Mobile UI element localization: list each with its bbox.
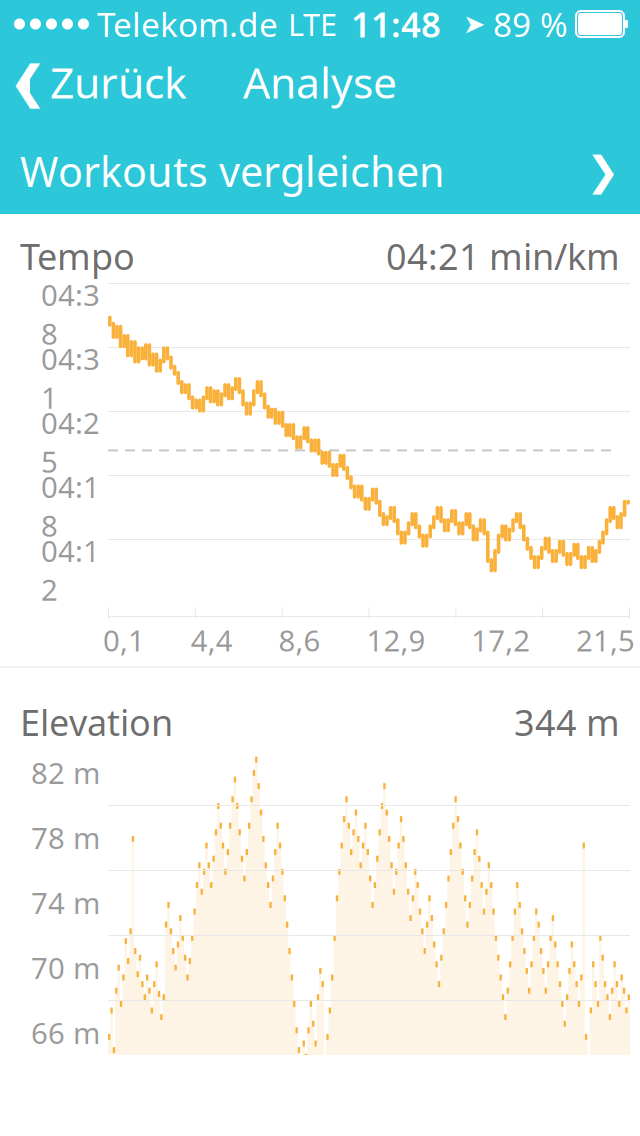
staticText: 78 m [31, 818, 100, 857]
staticText: 04:38 [41, 275, 100, 353]
staticText: Zurück [50, 54, 187, 110]
staticText: Telekom.de [97, 2, 278, 46]
staticText: 04:21 min/km [386, 232, 620, 280]
staticText: 66 m [31, 1013, 100, 1052]
staticText: 21,5 [576, 620, 635, 659]
staticText: ➤ [463, 9, 485, 39]
staticText: 04:25 [41, 403, 100, 481]
staticText: 04:31 [41, 339, 100, 417]
staticText: 344 m [514, 698, 620, 746]
staticText: ❯ [586, 148, 620, 194]
staticText: 0,1 [103, 620, 145, 659]
staticText: Tempo [20, 232, 135, 280]
staticText: Analyse [243, 54, 397, 110]
staticText: 04:12 [41, 531, 100, 609]
staticText: 74 m [31, 883, 100, 922]
button[interactable]: Workouts vergleichen [0, 140, 640, 202]
staticText: ❮ [9, 56, 47, 108]
staticText: 70 m [31, 948, 100, 987]
staticText: 89 % [493, 2, 568, 46]
staticText: 04:18 [41, 467, 100, 545]
staticText: 12,9 [366, 620, 425, 659]
staticText: Workouts vergleichen [20, 144, 445, 198]
staticText: Elevation [20, 698, 173, 746]
button[interactable]: ❮ [0, 54, 199, 110]
staticText: LTE [288, 4, 337, 44]
staticText: 11:48 [351, 1, 441, 47]
staticText: 4,4 [191, 620, 233, 659]
staticText: 17,2 [471, 620, 530, 659]
staticText: 8,6 [279, 620, 321, 659]
staticText: 82 m [31, 753, 100, 792]
